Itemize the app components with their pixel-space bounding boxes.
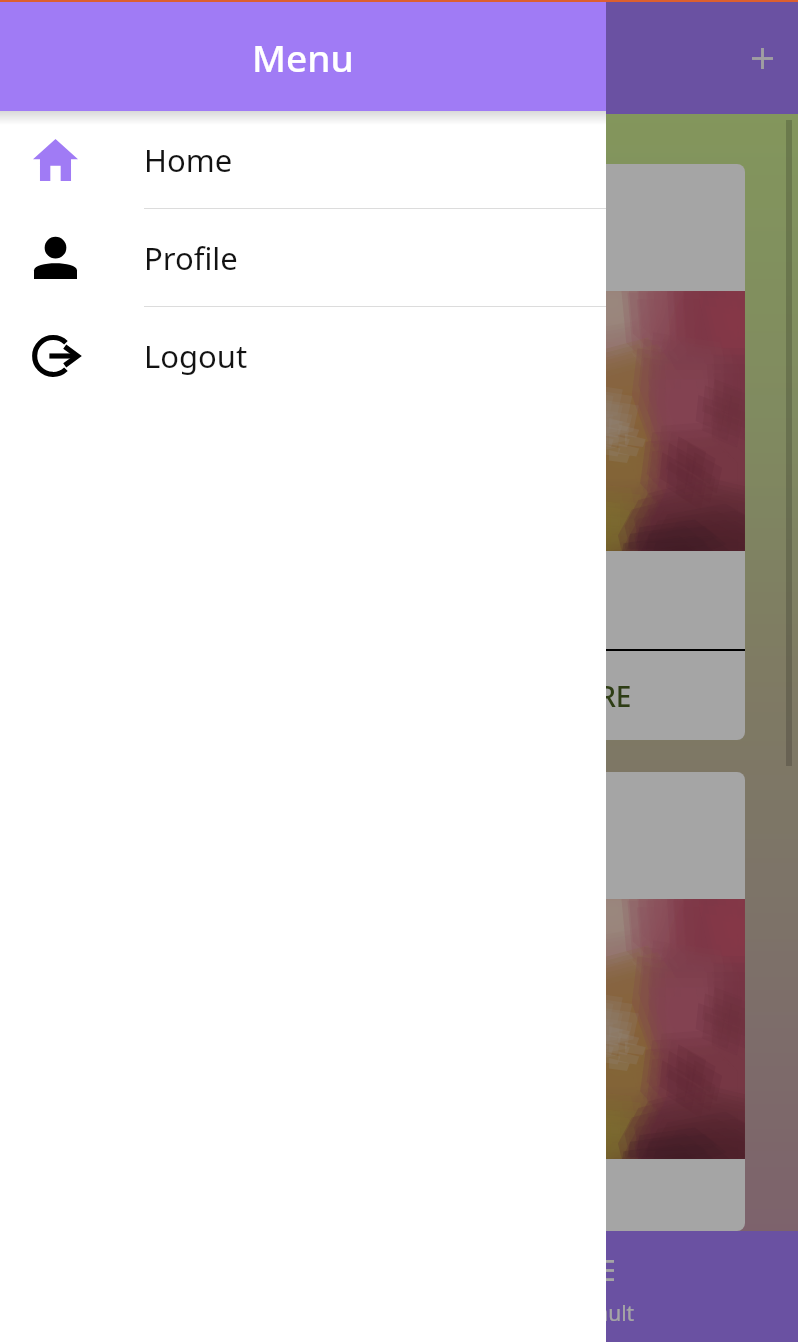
button[interactable]: EXPLORE [494, 663, 650, 729]
staticText: Default [562, 1299, 635, 1328]
staticText: Home [144, 139, 233, 181]
button[interactable]: EXPLORE [22, 164, 745, 740]
button[interactable]: Home [0, 111, 606, 208]
staticText: EXPLORE [512, 677, 632, 715]
button[interactable]: EXPLORE [22, 772, 745, 1231]
staticText: Menu [252, 32, 354, 82]
button[interactable]: Default [399, 1231, 798, 1342]
button[interactable]: Add [729, 25, 795, 91]
staticText: Profile [144, 237, 238, 279]
button[interactable]: Logout [0, 307, 606, 404]
staticText: Logout [144, 335, 248, 377]
button[interactable]: Profile [0, 209, 606, 306]
